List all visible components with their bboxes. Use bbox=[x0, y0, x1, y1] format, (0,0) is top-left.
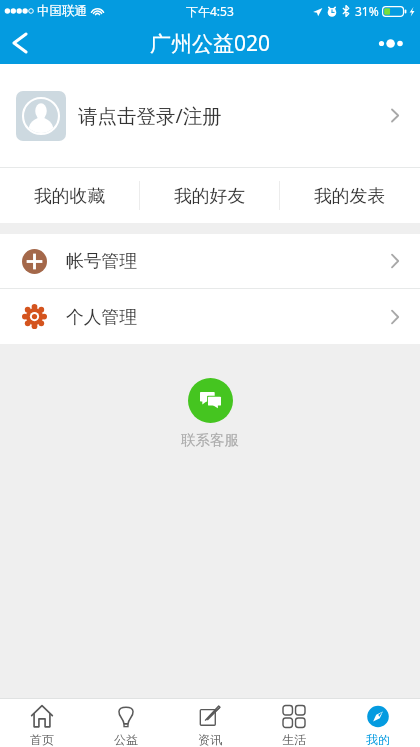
staticText: 首页 bbox=[30, 732, 54, 747]
button[interactable]: 我的发表 bbox=[280, 168, 420, 223]
button[interactable]: 联系客服 bbox=[181, 378, 239, 449]
staticText: 我的发表 bbox=[314, 185, 386, 207]
staticText: 资讯 bbox=[198, 732, 222, 747]
button[interactable]: 资讯 bbox=[168, 699, 252, 747]
staticText: 我的 bbox=[366, 732, 390, 747]
staticText: 个人管理 bbox=[66, 306, 138, 328]
button[interactable]: 首页 bbox=[0, 699, 84, 747]
button[interactable]: More options bbox=[376, 22, 420, 64]
button[interactable]: 我的好友 bbox=[140, 168, 280, 223]
staticText: 我的收藏 bbox=[34, 185, 106, 207]
button[interactable]: 帐号管理 bbox=[0, 234, 420, 288]
button[interactable]: 我的收藏 bbox=[0, 168, 140, 223]
button[interactable]: 个人管理 bbox=[0, 289, 420, 344]
staticText: 中国联通 bbox=[37, 3, 87, 19]
staticText: 下午4:53 bbox=[186, 3, 234, 19]
button[interactable]: 公益 bbox=[84, 699, 168, 747]
button[interactable]: 我的 bbox=[336, 699, 420, 747]
button[interactable]: Back bbox=[0, 22, 40, 64]
button[interactable]: 生活 bbox=[252, 699, 336, 747]
staticText: 31% bbox=[355, 3, 379, 19]
staticText: 公益 bbox=[114, 732, 138, 747]
staticText: 生活 bbox=[282, 732, 306, 747]
staticText: 联系客服 bbox=[181, 431, 239, 449]
staticText: 广州公益020 bbox=[150, 29, 271, 58]
button[interactable]: 请点击登录/注册 bbox=[0, 64, 420, 167]
staticText: 请点击登录/注册 bbox=[78, 102, 222, 129]
staticText: 我的好友 bbox=[174, 185, 246, 207]
staticText: 帐号管理 bbox=[66, 250, 138, 272]
